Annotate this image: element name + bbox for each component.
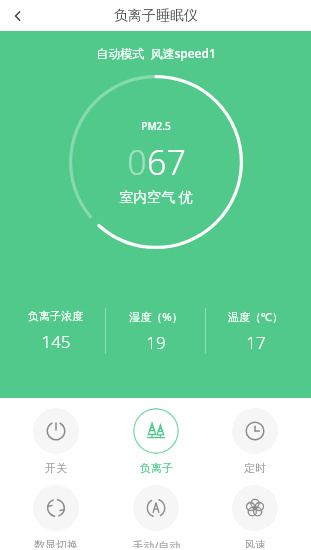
staticText: 室内空气 优 xyxy=(119,187,193,206)
staticText: 19 xyxy=(146,331,166,354)
button[interactable]: 负离子 xyxy=(113,406,199,477)
button[interactable]: 数显切换 xyxy=(13,483,99,550)
button[interactable]: 开关 xyxy=(13,406,99,477)
staticText: PM2.5 xyxy=(141,119,171,133)
staticText: 数显切换 xyxy=(34,538,78,548)
button[interactable]: 定时 xyxy=(212,406,298,477)
staticText: 67 xyxy=(147,139,186,185)
staticText: 负离子睡眠仪 xyxy=(114,7,198,25)
button[interactable]: 风速 xyxy=(212,483,298,550)
staticText: 负离子 xyxy=(140,461,173,475)
staticText: 湿度（%） xyxy=(129,309,183,324)
staticText: 手动/自动 xyxy=(132,538,181,548)
staticText: 开关 xyxy=(45,461,67,475)
staticText: 风速 xyxy=(244,538,266,548)
button[interactable]: Back xyxy=(0,0,36,31)
staticText: 0 xyxy=(127,139,147,185)
button[interactable]: 手动/自动 xyxy=(113,483,199,550)
staticText: 145 xyxy=(41,330,71,353)
staticText: 自动模式 风速speed1 xyxy=(96,45,216,61)
staticText: 17 xyxy=(246,331,266,354)
staticText: 温度（℃） xyxy=(228,309,283,324)
staticText: 负离子浓度 xyxy=(28,309,83,323)
staticText: 定时 xyxy=(244,461,266,475)
